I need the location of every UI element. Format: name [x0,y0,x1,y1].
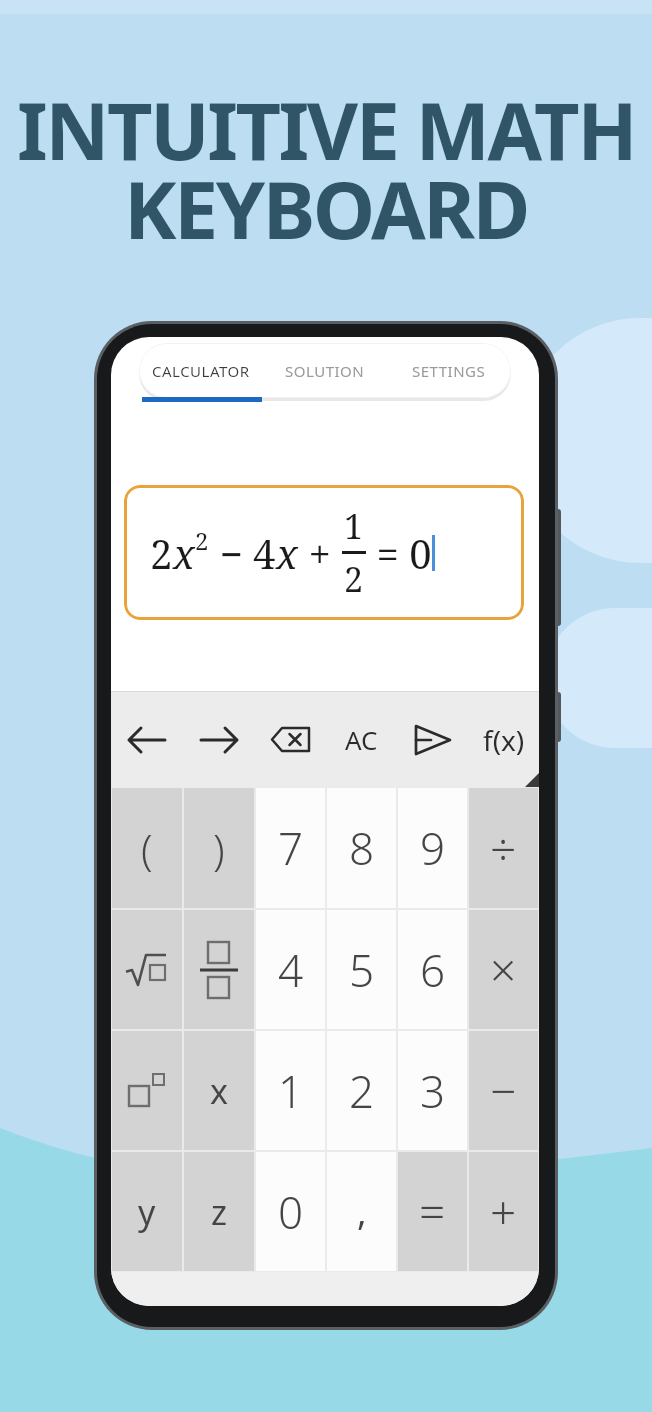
staticText: − 4 [209,526,276,580]
staticText: KEYBOARD [124,155,528,263]
button[interactable]: 3 [398,1031,467,1150]
button[interactable]: , [327,1152,396,1271]
button[interactable] [184,910,254,1029]
staticText: 9 [420,818,446,878]
staticText: , [357,1187,367,1236]
button[interactable]: − [469,1031,538,1150]
button[interactable]: ) [184,788,254,908]
staticText: × [490,938,517,1001]
button[interactable]: ( [112,788,182,908]
button[interactable]: 9 [398,788,467,908]
staticText: 3 [420,1061,446,1121]
button[interactable]: CALCULATOR [139,343,263,398]
staticText: x [276,526,298,580]
staticText: 0 [278,1182,304,1242]
staticText: x [173,526,195,580]
button[interactable]: × [469,910,538,1029]
staticText: − [490,1059,517,1122]
staticText: AC [345,722,378,757]
button[interactable]: 2 [150,485,524,620]
button[interactable]: z [184,1152,254,1271]
staticText: 7 [278,818,304,878]
button[interactable] [255,692,326,787]
staticText: 1 [278,1061,304,1121]
button[interactable]: 2 [327,1031,396,1150]
button[interactable]: = [398,1152,467,1271]
button[interactable]: 4 [256,910,325,1029]
staticText: + [490,1180,517,1243]
staticText: SETTINGS [412,361,486,381]
button[interactable]: SETTINGS [387,343,511,398]
staticText: x [210,1068,228,1114]
button[interactable]: 7 [256,788,325,908]
staticText: CALCULATOR [152,361,250,381]
staticText: = [419,1180,446,1243]
button[interactable] [112,1031,182,1150]
button[interactable]: 6 [398,910,467,1029]
button[interactable]: x [184,1031,254,1150]
button[interactable]: f(x) [468,692,539,787]
staticText: + [298,526,342,580]
staticText: y [138,1189,156,1235]
staticText: ( [141,820,153,877]
staticText: SOLUTION [285,361,365,381]
button[interactable]: y [112,1152,182,1271]
staticText: INTUITIVE MATH [17,76,636,184]
button[interactable] [183,692,255,787]
button[interactable]: + [469,1152,538,1271]
button[interactable] [112,910,182,1029]
button[interactable]: ÷ [469,788,538,908]
button[interactable]: AC [326,692,397,787]
staticText: = 0 [366,526,432,580]
staticText: 2 [195,524,209,557]
button[interactable]: 8 [327,788,396,908]
button[interactable]: 0 [256,1152,325,1271]
staticText: 6 [420,940,446,1000]
staticText: 8 [349,818,375,878]
button[interactable]: 5 [327,910,396,1029]
button[interactable]: 1 [256,1031,325,1150]
staticText: 2 [150,526,173,580]
button[interactable] [111,692,183,787]
staticText: 2 [349,1061,375,1121]
staticText: 2 [344,556,364,602]
button[interactable] [397,692,468,787]
staticText: ) [213,820,225,877]
staticText: 1 [344,503,364,549]
staticText: ÷ [490,817,517,880]
staticText: 5 [349,940,375,1000]
staticText: f(x) [483,721,525,759]
button[interactable]: SOLUTION [263,343,387,398]
staticText: 4 [278,940,304,1000]
staticText: z [211,1189,227,1235]
